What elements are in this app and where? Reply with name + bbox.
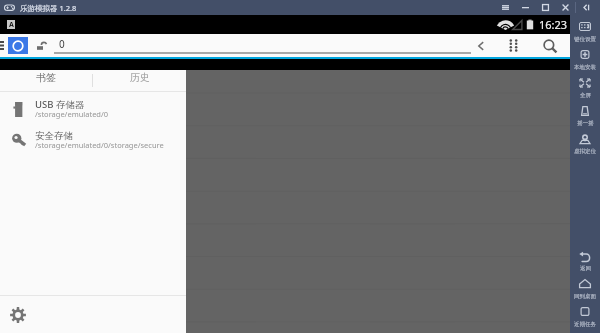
staticText: 16:23 (539, 17, 568, 32)
staticText: 历史 (130, 71, 150, 84)
button[interactable]: 本地安装 (570, 48, 600, 76)
staticText: 乐游模拟器 1.2.8 (20, 3, 77, 13)
staticText: 键位设置 (574, 36, 596, 43)
button[interactable]: 虚拟定位 (570, 132, 600, 160)
button[interactable]: Maximize (535, 0, 555, 15)
button[interactable]: 书签 (0, 70, 92, 91)
staticText: A (9, 20, 14, 29)
button[interactable]: 全屏 (570, 76, 600, 104)
button[interactable]: 摇一摇 (570, 104, 600, 132)
button[interactable]: Collapse (576, 0, 596, 15)
button[interactable]: Back (476, 40, 486, 52)
staticText: 本地安装 (574, 64, 596, 71)
staticText: 虚拟定位 (574, 148, 596, 155)
button[interactable]: Menu (495, 0, 515, 15)
button[interactable]: Settings (0, 296, 186, 333)
staticText: 近期任务 (574, 321, 596, 328)
button[interactable]: Apps (509, 39, 518, 52)
button[interactable]: Browser home (8, 37, 28, 54)
button[interactable]: 近期任务 (570, 305, 600, 333)
button[interactable]: 回到桌面 (570, 277, 600, 305)
staticText: 回到桌面 (574, 293, 596, 300)
staticText: USB 存储器 (35, 98, 85, 111)
button[interactable]: 历史 (93, 70, 186, 91)
button[interactable]: 安全存储 (0, 125, 186, 156)
button[interactable]: Search (543, 39, 557, 53)
button[interactable]: Minimize (515, 0, 535, 15)
staticText: 摇一摇 (577, 120, 594, 127)
button[interactable]: Site security (37, 41, 47, 51)
staticText: /storage/emulated/0 (35, 109, 109, 119)
staticText: /storage/emulated/0/storage/secure (35, 140, 164, 150)
staticText: 安全存储 (35, 130, 73, 142)
button[interactable]: USB 存储器 (0, 94, 186, 125)
button[interactable]: Close (555, 0, 575, 15)
button[interactable]: 键位设置 (570, 20, 600, 48)
staticText: 书签 (36, 71, 56, 84)
staticText: 全屏 (580, 92, 591, 99)
staticText: 返回 (580, 265, 591, 272)
staticText: 0 (59, 37, 65, 51)
button[interactable]: Menu (0, 40, 4, 51)
button[interactable]: 返回 (570, 249, 600, 277)
